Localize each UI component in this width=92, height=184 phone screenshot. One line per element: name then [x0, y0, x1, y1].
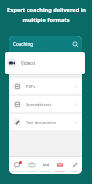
button[interactable]: Text documents — [9, 114, 82, 130]
staticText: Workouts — [40, 169, 51, 172]
staticText: Messages — [11, 169, 23, 172]
staticText: Videos — [21, 60, 36, 66]
button[interactable]: PDFs — [9, 78, 82, 94]
staticText: Text documents — [26, 120, 56, 125]
staticText: Notes — [71, 169, 78, 172]
button[interactable]: Search — [72, 41, 79, 48]
button[interactable]: Programs — [25, 160, 38, 172]
button[interactable]: Messages — [10, 160, 23, 172]
staticText: PDFs — [26, 84, 36, 89]
button[interactable]: Workouts — [39, 160, 52, 172]
staticText: Spreadsheets — [26, 102, 52, 107]
staticText: Coaching — [13, 41, 34, 47]
staticText: Programs — [26, 169, 37, 172]
staticText: multiple formats — [22, 16, 70, 24]
staticText: Coaching — [54, 169, 65, 172]
button[interactable]: Coaching — [53, 160, 66, 172]
button[interactable]: Videos — [5, 52, 85, 74]
staticText: Expert coaching delivered in — [7, 6, 86, 14]
button[interactable]: Spreadsheets — [9, 96, 82, 112]
button[interactable]: Notes — [68, 160, 81, 172]
